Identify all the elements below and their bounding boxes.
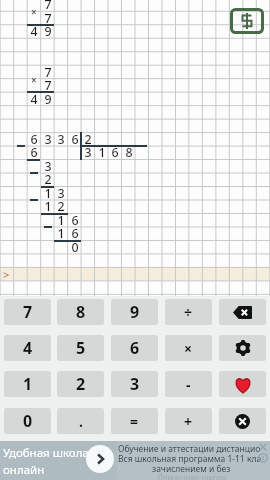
staticText: 6	[71, 212, 79, 225]
staticText: Удобная школа онлайн	[3, 445, 89, 477]
button[interactable]: 7	[4, 299, 51, 325]
staticText: 9	[44, 91, 52, 104]
button[interactable]: 5	[57, 335, 104, 361]
staticText: 7	[44, 10, 52, 23]
button[interactable]: 8	[57, 299, 104, 325]
button[interactable]: ×	[165, 335, 212, 361]
button[interactable]: close	[219, 408, 266, 434]
staticText: 5	[76, 337, 86, 359]
staticText: 8	[125, 144, 133, 157]
staticText: Вся школьная программа 1-11 кла	[118, 453, 262, 465]
button[interactable]: Open ad	[86, 445, 114, 473]
staticText: зачислением и без	[152, 463, 231, 475]
button[interactable]: heart	[219, 371, 266, 397]
staticText: 3	[84, 144, 92, 157]
button[interactable]: Удобная школа онлайн	[0, 441, 270, 480]
staticText: +	[184, 412, 193, 431]
button[interactable]: bksp	[219, 299, 266, 325]
staticText: 7	[44, 77, 52, 90]
staticText: 1	[44, 185, 52, 198]
staticText: 3	[44, 158, 52, 171]
staticText: 9	[44, 23, 52, 36]
staticText: 6	[30, 131, 38, 144]
staticText: ÷	[184, 303, 193, 322]
staticText: 6	[130, 337, 140, 359]
staticText: 4	[30, 91, 38, 104]
button[interactable]: 9	[111, 299, 158, 325]
staticText: 1	[44, 198, 52, 211]
staticText: 7	[44, 0, 52, 9]
staticText: 8	[76, 301, 86, 323]
staticText: 2	[76, 373, 86, 395]
staticText: 7	[44, 64, 52, 77]
staticText: 9	[130, 301, 140, 323]
staticText: 3	[44, 131, 52, 144]
staticText: =	[130, 412, 139, 431]
button[interactable]: 4	[4, 335, 51, 361]
staticText: 6	[111, 144, 119, 157]
staticText: 2	[84, 131, 92, 144]
staticText: 1	[98, 144, 106, 157]
staticText: ×	[184, 339, 193, 358]
staticText: 4	[23, 337, 33, 359]
staticText: 3	[57, 131, 65, 144]
staticText: 7	[23, 301, 33, 323]
button[interactable]: 6	[111, 335, 158, 361]
staticText: 3	[57, 185, 65, 198]
staticText: 2	[57, 198, 65, 211]
staticText: 1	[57, 225, 65, 238]
button[interactable]: 1	[4, 371, 51, 397]
staticText: Домашняя школа	[157, 472, 227, 480]
button[interactable]: 0	[4, 408, 51, 434]
staticText: 4	[30, 23, 38, 36]
staticText: 6	[30, 144, 38, 157]
staticText: 1	[23, 373, 33, 395]
staticText: 6	[71, 225, 79, 238]
button[interactable]: gear	[219, 335, 266, 361]
button[interactable]: 2	[57, 371, 104, 397]
staticText: 0	[23, 410, 33, 432]
staticText: 1	[57, 212, 65, 225]
button[interactable]: .	[57, 408, 104, 434]
button[interactable]: Remove ads	[230, 8, 264, 34]
staticText: .	[79, 412, 83, 431]
staticText: Обучение и аттестации дистанцио	[118, 443, 261, 455]
staticText: 6	[71, 131, 79, 144]
staticText: 3	[130, 373, 140, 395]
staticText: ×	[31, 5, 37, 17]
button[interactable]: -	[165, 371, 212, 397]
button[interactable]: ÷	[165, 299, 212, 325]
button[interactable]: 3	[111, 371, 158, 397]
button[interactable]: =	[111, 408, 158, 434]
staticText: ×	[31, 73, 37, 85]
button[interactable]: +	[165, 408, 212, 434]
staticText: 2	[44, 171, 52, 184]
staticText: >	[3, 267, 10, 280]
staticText: 0	[71, 239, 79, 252]
staticText: -	[186, 375, 191, 394]
